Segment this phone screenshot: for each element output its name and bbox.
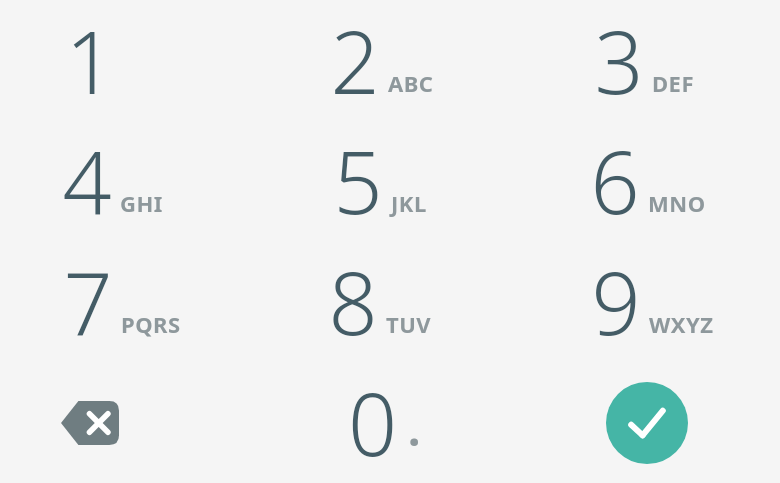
- staticText: MNO: [648, 188, 706, 218]
- staticText: WXYZ: [649, 309, 714, 339]
- button[interactable]: 8: [260, 241, 520, 362]
- button[interactable]: 6: [520, 120, 780, 241]
- staticText: 6: [590, 122, 640, 239]
- staticText: 1: [65, 2, 115, 119]
- button[interactable]: 1: [0, 0, 260, 120]
- staticText: 2: [330, 2, 380, 119]
- staticText: 3: [594, 2, 644, 119]
- button[interactable]: 3: [520, 0, 780, 120]
- staticText: TUV: [386, 309, 432, 339]
- button[interactable]: 0: [254, 362, 514, 483]
- button[interactable]: Backspace: [0, 362, 220, 483]
- staticText: 4: [62, 122, 112, 239]
- staticText: 7: [63, 243, 113, 360]
- staticText: .: [408, 399, 421, 459]
- button[interactable]: 9: [520, 241, 780, 362]
- staticText: GHI: [120, 188, 163, 218]
- staticText: 0: [348, 364, 398, 481]
- button[interactable]: 4: [0, 120, 260, 241]
- staticText: 9: [591, 243, 641, 360]
- staticText: ABC: [388, 68, 434, 98]
- button[interactable]: 2: [260, 0, 520, 120]
- button[interactable]: 5: [260, 120, 520, 241]
- staticText: 5: [333, 122, 383, 239]
- staticText: JKL: [391, 188, 427, 218]
- button[interactable]: Call: [606, 382, 688, 464]
- button[interactable]: 7: [0, 241, 260, 362]
- staticText: 8: [328, 243, 378, 360]
- staticText: DEF: [652, 68, 695, 98]
- staticText: PQRS: [121, 309, 181, 339]
